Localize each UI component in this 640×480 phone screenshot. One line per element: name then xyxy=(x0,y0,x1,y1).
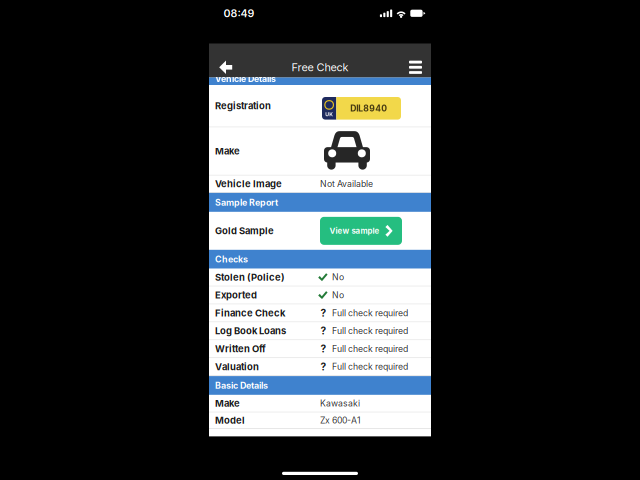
staticText: Valuation xyxy=(215,361,259,372)
staticText: View sample xyxy=(329,226,379,236)
staticText: Sample Report xyxy=(215,197,278,208)
staticText: Written Off xyxy=(215,343,266,355)
staticText: Free Check xyxy=(291,61,348,74)
staticText: ? xyxy=(320,361,326,373)
button[interactable]: Back xyxy=(215,57,237,77)
staticText: Kawasaki xyxy=(320,398,360,409)
staticText: ? xyxy=(320,325,326,337)
staticText: ? xyxy=(320,307,326,319)
staticText: Registration xyxy=(215,100,271,112)
staticText: Vehicle Image xyxy=(215,178,282,190)
staticText: Make xyxy=(215,398,240,409)
staticText: Full check required xyxy=(332,326,408,336)
staticText: Full check required xyxy=(332,344,408,354)
staticText: 08:49 xyxy=(223,7,254,20)
staticText: Checks xyxy=(215,254,248,265)
staticText: Stolen (Police) xyxy=(215,271,285,283)
staticText: Model xyxy=(215,415,245,426)
staticText: ? xyxy=(320,343,326,355)
button[interactable]: View sample xyxy=(320,217,402,245)
staticText: Gold Sample xyxy=(215,225,274,237)
button[interactable]: Menu xyxy=(404,57,426,77)
staticText: Zx 600-A1 xyxy=(320,415,361,426)
staticText: Finance Check xyxy=(215,307,285,319)
staticText: Log Book Loans xyxy=(215,325,286,337)
staticText: Exported xyxy=(215,289,257,301)
staticText: Full check required xyxy=(332,361,408,372)
staticText: No xyxy=(332,272,344,282)
staticText: DIL8940 xyxy=(350,103,387,113)
staticText: No xyxy=(332,290,344,300)
staticText: Make xyxy=(215,145,240,157)
staticText: UK xyxy=(325,111,333,117)
staticText: Vehicle Details xyxy=(215,73,276,84)
staticText: Not Available xyxy=(320,179,373,189)
staticText: Basic Details xyxy=(215,380,268,391)
staticText: Full check required xyxy=(332,308,408,318)
